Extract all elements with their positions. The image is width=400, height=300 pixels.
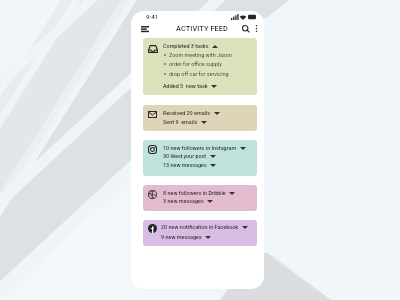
- staticText: 9 new messages: [161, 234, 202, 240]
- staticText: 20 new notification in Facebook: [161, 224, 239, 230]
- staticText: Received 20 emails: [163, 110, 211, 116]
- button[interactable]: 10 new followers in Instagram: [163, 145, 246, 151]
- button[interactable]: Added 5 new task: [163, 83, 217, 89]
- button[interactable]: [143, 105, 257, 131]
- button[interactable]: Completed 3 tasks: [163, 43, 218, 49]
- staticText: Completed 3 tasks: [163, 43, 209, 49]
- button[interactable]: [143, 220, 257, 246]
- button[interactable]: [143, 38, 257, 95]
- button[interactable]: ACTIVITY FEED: [176, 24, 228, 33]
- staticText: 30 liked your post: [163, 153, 207, 159]
- button[interactable]: Sent 9 emails: [163, 119, 207, 125]
- staticText: 3 new messages: [163, 198, 204, 204]
- button[interactable]: Search: [240, 22, 252, 35]
- staticText: 10 new followers in Instagram: [163, 145, 237, 151]
- button[interactable]: [143, 185, 257, 211]
- staticText: 9:41: [146, 13, 159, 20]
- button[interactable]: More options: [252, 22, 261, 35]
- button[interactable]: 3 new messages: [163, 198, 213, 204]
- staticText: ACTIVITY FEED: [176, 24, 228, 33]
- button[interactable]: 9 new messages: [161, 234, 211, 240]
- staticText: Sent 9 emails: [163, 119, 198, 125]
- button[interactable]: Received 20 emails: [163, 110, 220, 116]
- button[interactable]: 8 new followers in Dribble: [163, 190, 235, 196]
- button[interactable]: 20 new notification in Facebook: [161, 224, 248, 230]
- staticText: drop off car for servicing: [169, 71, 229, 77]
- button[interactable]: 13 new messages: [163, 162, 216, 168]
- button[interactable]: [143, 140, 257, 176]
- staticText: Added 5 new task: [163, 83, 208, 89]
- staticText: 8 new followers in Dribble: [163, 190, 226, 196]
- staticText: order for office supply: [169, 61, 222, 67]
- button[interactable]: 30 liked your post: [163, 153, 216, 159]
- staticText: Zoom meeting with Jason: [169, 52, 232, 58]
- button[interactable]: Menu: [138, 22, 152, 35]
- staticText: 13 new messages: [163, 162, 207, 168]
